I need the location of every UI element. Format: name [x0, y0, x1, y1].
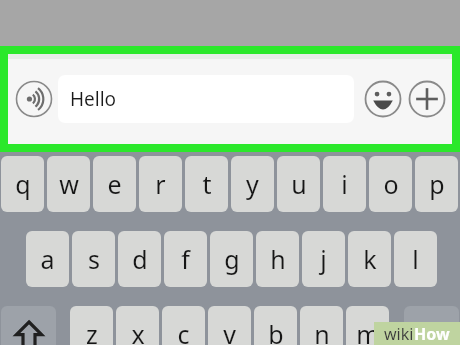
button[interactable]: a [26, 231, 69, 287]
button[interactable]: Shift [1, 306, 56, 345]
button[interactable]: h [256, 231, 299, 287]
button[interactable]: x [116, 306, 159, 345]
button[interactable]: Voice message [14, 79, 54, 119]
staticText: wiki [384, 323, 414, 345]
button[interactable]: i [323, 156, 366, 212]
staticText: x [131, 317, 145, 345]
staticText: d [132, 242, 148, 276]
staticText: Hello [70, 86, 117, 112]
staticText: f [181, 242, 190, 276]
staticText: l [412, 242, 419, 276]
staticText: u [291, 167, 307, 201]
button[interactable]: w [47, 156, 90, 212]
button[interactable]: e [93, 156, 136, 212]
button[interactable]: c [162, 306, 205, 345]
staticText: i [341, 167, 348, 201]
staticText: c [177, 317, 190, 345]
staticText: w [59, 167, 79, 201]
staticText: y [246, 167, 259, 201]
button[interactable]: v [208, 306, 251, 345]
staticText: b [268, 317, 284, 345]
staticText: p [429, 167, 445, 201]
button[interactable]: Emoji [362, 78, 404, 120]
staticText: n [314, 317, 330, 345]
button[interactable]: k [348, 231, 391, 287]
staticText: e [107, 167, 122, 201]
staticText: k [363, 242, 377, 276]
button[interactable]: o [369, 156, 412, 212]
button[interactable]: m [346, 306, 389, 345]
button[interactable]: q [1, 156, 44, 212]
staticText: m [356, 317, 380, 345]
button[interactable]: j [302, 231, 345, 287]
staticText: a [40, 242, 55, 276]
staticText: How [414, 323, 450, 345]
staticText: r [155, 167, 166, 201]
button[interactable]: g [210, 231, 253, 287]
staticText: h [270, 242, 286, 276]
staticText: o [383, 167, 399, 201]
button[interactable]: Backspace [404, 306, 459, 345]
button[interactable]: y [231, 156, 274, 212]
button[interactable]: s [72, 231, 115, 287]
button[interactable]: p [415, 156, 458, 212]
button[interactable]: b [254, 306, 297, 345]
staticText: v [223, 317, 236, 345]
staticText: q [15, 167, 31, 201]
button[interactable]: t [185, 156, 228, 212]
button[interactable]: n [300, 306, 343, 345]
button[interactable]: f [164, 231, 207, 287]
button[interactable]: l [394, 231, 437, 287]
staticText: g [224, 242, 240, 276]
button[interactable]: u [277, 156, 320, 212]
button[interactable]: Add attachment [406, 78, 448, 120]
staticText: s [88, 242, 100, 276]
staticText: t [202, 167, 212, 201]
staticText: z [86, 317, 98, 345]
staticText: j [320, 242, 327, 276]
button[interactable]: Hello [58, 75, 354, 123]
button[interactable]: z [70, 306, 113, 345]
button[interactable]: d [118, 231, 161, 287]
button[interactable]: r [139, 156, 182, 212]
